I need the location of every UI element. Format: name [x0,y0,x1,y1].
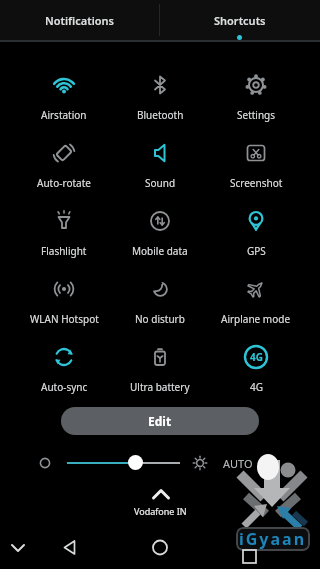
button[interactable] [8,538,28,558]
button[interactable]: Settings [204,72,308,122]
button[interactable]: Airstation [12,72,116,122]
staticText: Airplane mode [221,312,291,326]
staticText: 4G [250,350,263,364]
staticText: Edit [148,413,172,429]
staticText: Auto-rotate [37,176,91,190]
staticText: Mobile data [132,244,188,258]
button[interactable]: Edit [61,407,259,435]
button[interactable] [56,535,84,561]
button[interactable]: Ultra battery [108,344,212,394]
staticText: iGyaan [239,528,307,550]
staticText: Settings [237,108,276,122]
button[interactable]: AUTO [217,454,259,472]
staticText: GPS [247,244,266,258]
staticText: 4G [250,380,263,394]
staticText: Screenshot [230,176,283,190]
staticText: No disturb [135,312,185,326]
button[interactable]: Notifications [0,0,160,40]
staticText: WLAN Hotspot [30,312,99,326]
button[interactable]: 4G [204,344,308,394]
button[interactable]: Auto-sync [12,344,116,394]
staticText: AUTO [223,456,253,471]
staticText: Vodafone IN [134,505,187,517]
staticText: Flashlight [41,244,87,258]
button[interactable]: Airplane mode [204,276,308,326]
staticText: Shortcuts [214,13,266,28]
button[interactable]: Screenshot [204,140,308,190]
button[interactable]: WLAN Hotspot [12,276,116,326]
staticText: Airstation [41,108,87,122]
button[interactable]: Flashlight [12,208,116,258]
staticText: Bluetooth [137,108,184,122]
button[interactable]: Auto-rotate [12,140,116,190]
button[interactable]: No disturb [108,276,212,326]
staticText: Ultra battery [130,380,190,394]
button[interactable]: Bluetooth [108,72,212,122]
staticText: Notifications [45,13,115,28]
button[interactable] [240,547,260,567]
staticText: Sound [145,176,176,190]
staticText: Auto-sync [41,380,88,394]
button[interactable] [146,535,174,561]
button[interactable]: GPS [204,208,308,258]
button[interactable]: Shortcuts [160,0,320,40]
button[interactable] [128,455,143,470]
button[interactable]: Mobile data [108,208,212,258]
button[interactable]: Vodafone IN [120,488,200,522]
button[interactable]: Sound [108,140,212,190]
